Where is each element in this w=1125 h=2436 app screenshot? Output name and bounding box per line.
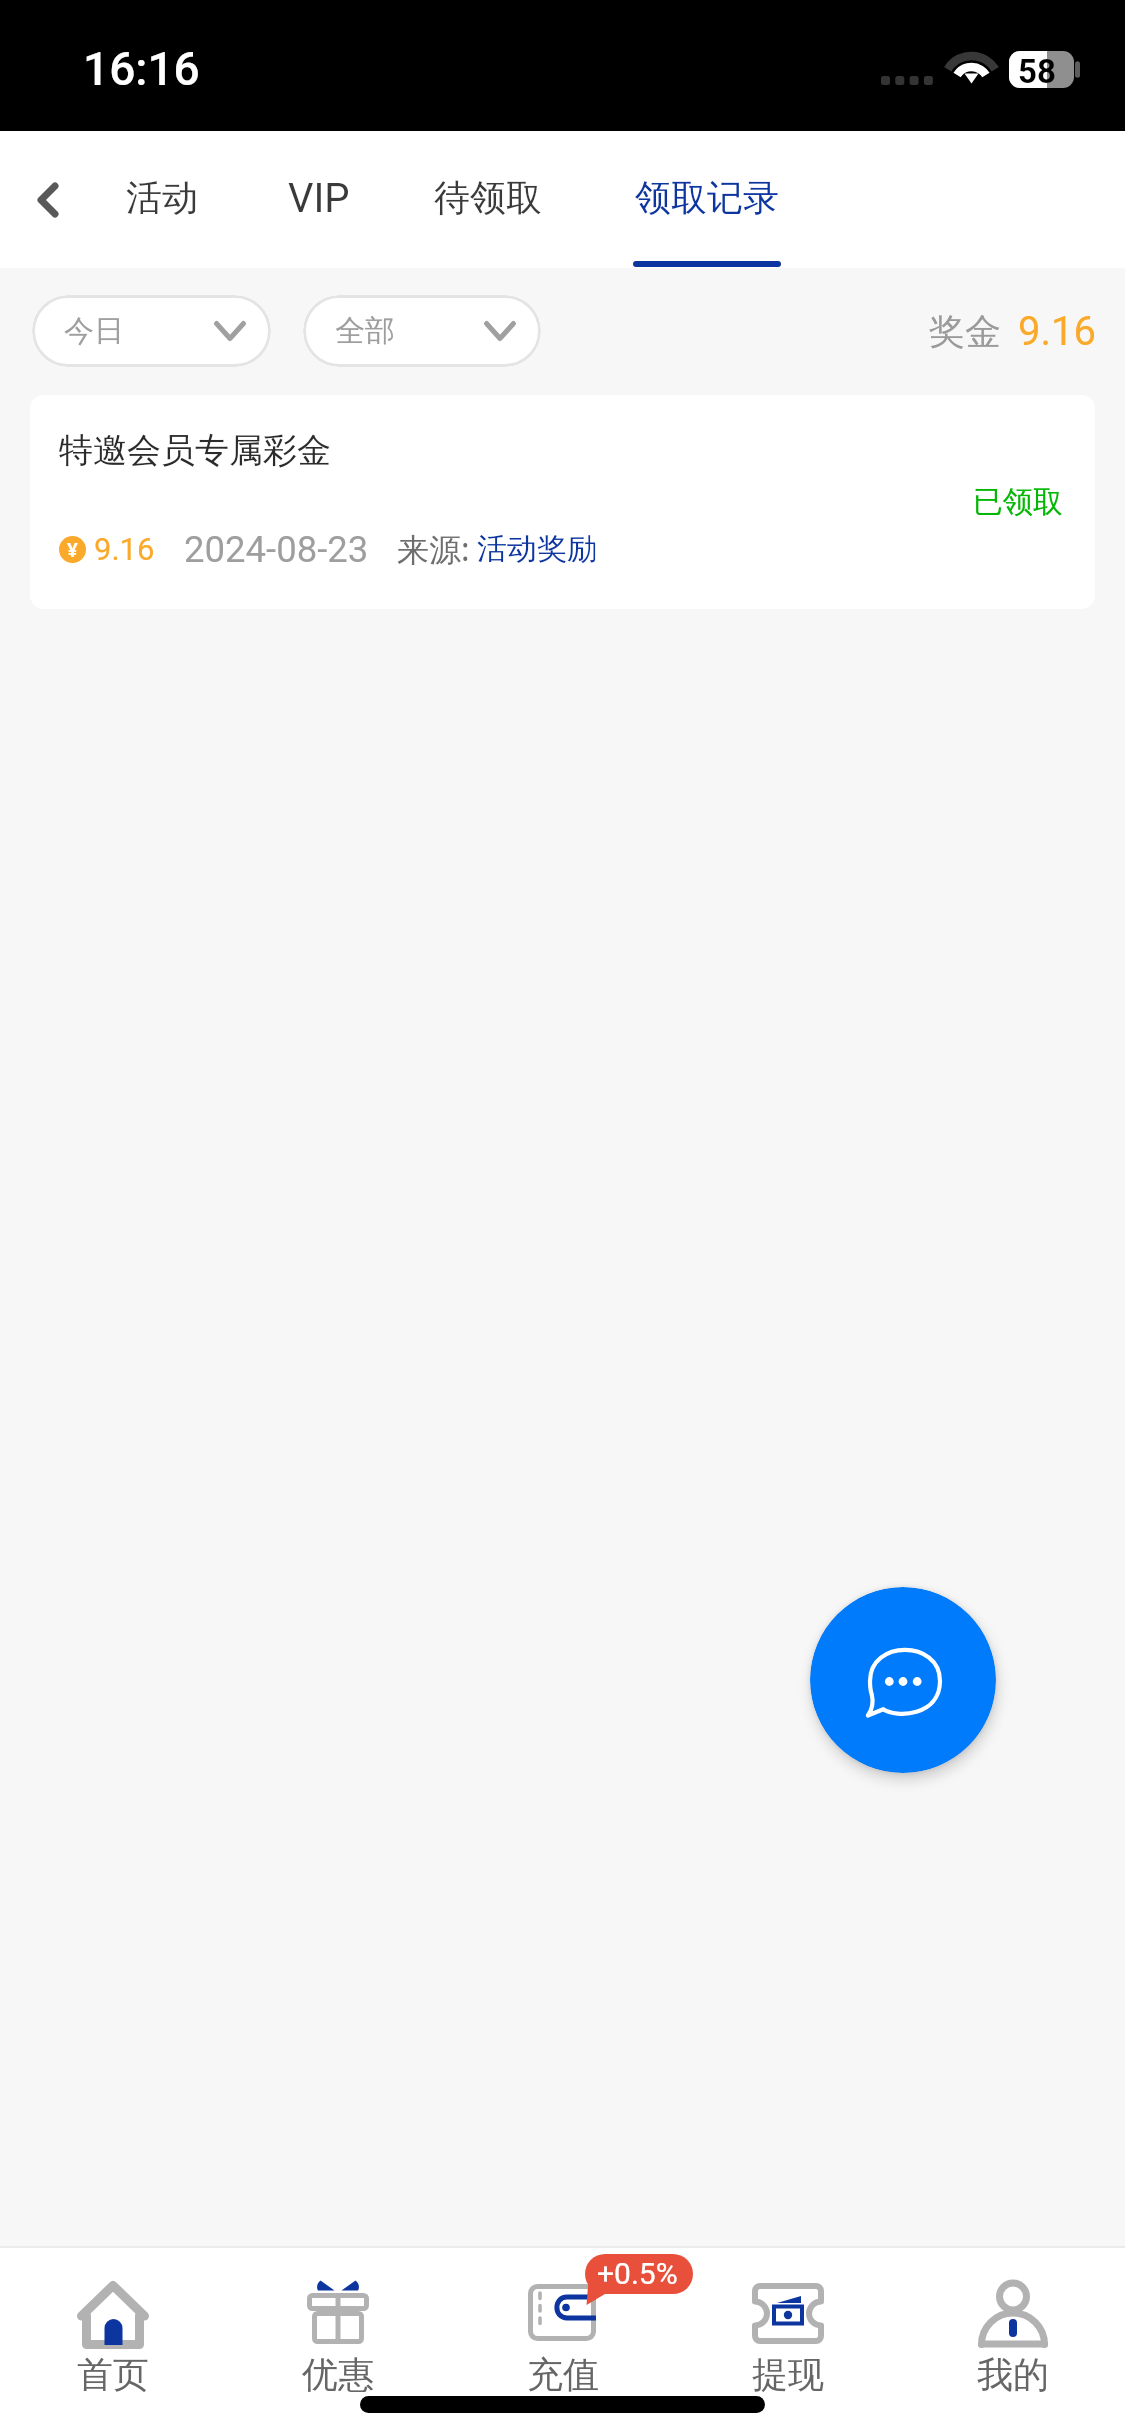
button[interactable]: 提现 [675,2248,900,2436]
staticText: 我的 [977,2352,1049,2397]
staticText: 全部 [335,312,395,350]
staticText: VIP [288,175,350,222]
staticText: ¥ [67,537,78,563]
staticText: 领取记录 [635,175,779,220]
staticText: 特邀会员专属彩金 [59,429,331,472]
staticText: 已领取 [973,483,1063,521]
staticText: 9.16 [94,531,155,567]
button[interactable]: 活动 [105,131,219,268]
staticText: 16:16 [83,42,200,96]
button[interactable]: Back [13,159,83,229]
staticText: 提现 [752,2352,824,2397]
button[interactable]: 充值 [450,2248,675,2436]
button[interactable]: 首页 [0,2248,225,2436]
button[interactable]: 领取记录 [614,131,800,268]
button[interactable]: VIP [267,131,370,268]
button[interactable]: 特邀会员专属彩金 [30,395,1095,609]
button[interactable]: 我的 [900,2248,1125,2436]
staticText: 充值 [527,2352,599,2397]
staticText: 活动 [126,175,198,220]
button[interactable]: 优惠 [225,2248,450,2436]
staticText: 活动奖励 [477,530,597,568]
staticText: 58 [1018,52,1056,89]
staticText: 首页 [77,2352,149,2397]
button[interactable]: Customer service chat [810,1587,996,1773]
staticText: +0.5% [597,2256,678,2291]
staticText: 2024-08-23 [184,528,369,571]
staticText: 9.16 [1018,308,1096,355]
staticText: 优惠 [302,2352,374,2397]
button[interactable]: 今日 [32,295,271,367]
staticText: 今日 [64,312,124,350]
staticText: 待领取 [434,175,542,220]
button[interactable]: 待领取 [413,131,563,268]
button[interactable]: 全部 [303,295,541,367]
staticText: 奖金 [929,309,1001,354]
staticText: 来源: [397,527,470,571]
